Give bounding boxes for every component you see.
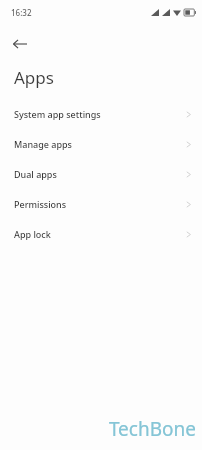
staticText: TechBone [108, 416, 196, 442]
staticText: Apps [14, 66, 54, 89]
staticText: System app settings [14, 108, 101, 120]
button[interactable]: Manage apps [0, 129, 202, 159]
button[interactable]: Back [0, 24, 40, 64]
button[interactable]: System app settings [0, 99, 202, 129]
staticText: Dual apps [14, 168, 57, 180]
staticText: Permissions [14, 198, 67, 210]
staticText: Manage apps [14, 138, 72, 150]
staticText: App lock [14, 228, 51, 240]
button[interactable]: App lock [0, 219, 202, 249]
button[interactable]: Permissions [0, 189, 202, 219]
staticText: 16:32 [11, 7, 32, 18]
button[interactable]: Dual apps [0, 159, 202, 189]
